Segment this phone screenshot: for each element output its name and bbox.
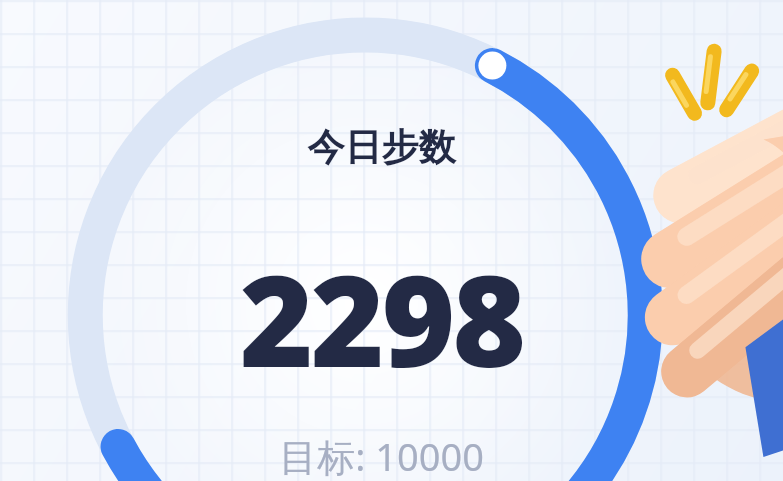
staticText: 2298 (0, 232, 763, 404)
button[interactable]: Today's steps 2298 of 10000 (0, 0, 783, 481)
staticText: 今日步数 (0, 124, 763, 171)
staticText: 目标: 10000 (0, 430, 763, 481)
